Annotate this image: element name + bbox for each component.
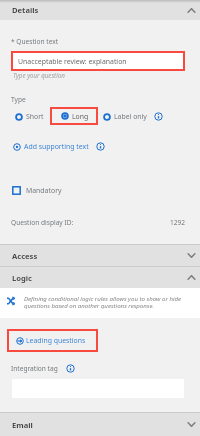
button[interactable]: Email	[0, 413, 200, 436]
button[interactable]: Details	[0, 0, 200, 20]
staticText: 1292	[170, 218, 186, 227]
button[interactable]: Unacceptable review: explanation	[13, 53, 183, 69]
button[interactable]: Add supporting text	[13, 141, 89, 152]
staticText: Email	[12, 420, 33, 430]
staticText: Label only	[114, 112, 147, 121]
staticText: Details	[12, 5, 39, 15]
staticText: Leading questions	[26, 336, 86, 345]
button[interactable]: Mandatory	[12, 185, 62, 196]
staticText: Long	[72, 112, 89, 121]
staticText: Mandatory	[26, 186, 62, 195]
staticText: Access	[12, 251, 38, 261]
button[interactable]: Leading questions	[9, 331, 96, 350]
staticText: Question display ID:	[11, 218, 74, 227]
button[interactable]: More information about supporting text	[96, 142, 105, 151]
button[interactable]: Short	[15, 112, 44, 121]
button[interactable]: Logic	[0, 267, 200, 288]
staticText: Short	[26, 112, 44, 121]
staticText: Type your question	[13, 71, 65, 79]
button[interactable]: More information about question type	[154, 112, 163, 121]
button[interactable]: Label only	[103, 112, 147, 121]
staticText: Unacceptable review: explanation	[18, 57, 127, 66]
staticText: Add supporting text	[24, 142, 89, 151]
button[interactable]: Access	[0, 245, 200, 266]
staticText: * Question text	[11, 37, 59, 46]
staticText: Logic	[12, 273, 32, 283]
button[interactable]: Long	[52, 109, 96, 123]
staticText: Defining conditional logic rules allows …	[24, 294, 194, 309]
staticText: Integration tag	[11, 364, 58, 373]
staticText: Type	[11, 95, 26, 104]
